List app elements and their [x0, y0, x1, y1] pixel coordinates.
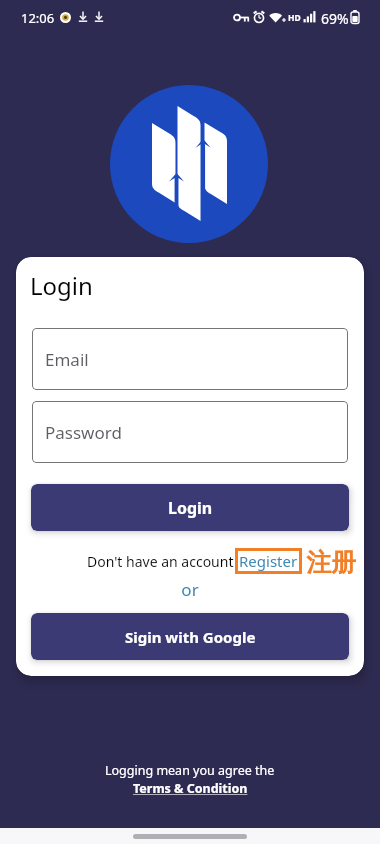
staticText: Sigin with Google: [125, 627, 256, 647]
staticText: HD: [288, 12, 301, 24]
staticText: Password: [45, 421, 122, 444]
staticText: Login: [168, 497, 213, 519]
other: App logo: [110, 85, 268, 243]
button[interactable]: Sigin with Google: [31, 613, 349, 660]
button[interactable]: Terms & Condition: [133, 780, 248, 797]
staticText: or: [16, 578, 364, 601]
button[interactable]: Email: [32, 328, 348, 390]
staticText: Email: [45, 348, 89, 371]
staticText: Don't have an account: [87, 552, 234, 571]
button[interactable]: Password: [32, 401, 348, 463]
button[interactable]: Login: [31, 484, 349, 531]
button[interactable]: Register: [235, 548, 302, 574]
staticText: Login: [30, 269, 93, 302]
staticText: Logging mean you agree the: [105, 762, 275, 779]
staticText: 12:06: [21, 9, 55, 27]
staticText: 69%: [321, 9, 349, 28]
staticText: Terms & Condition: [133, 780, 248, 797]
staticText: Register: [239, 551, 298, 571]
staticText: 注册: [306, 547, 356, 578]
